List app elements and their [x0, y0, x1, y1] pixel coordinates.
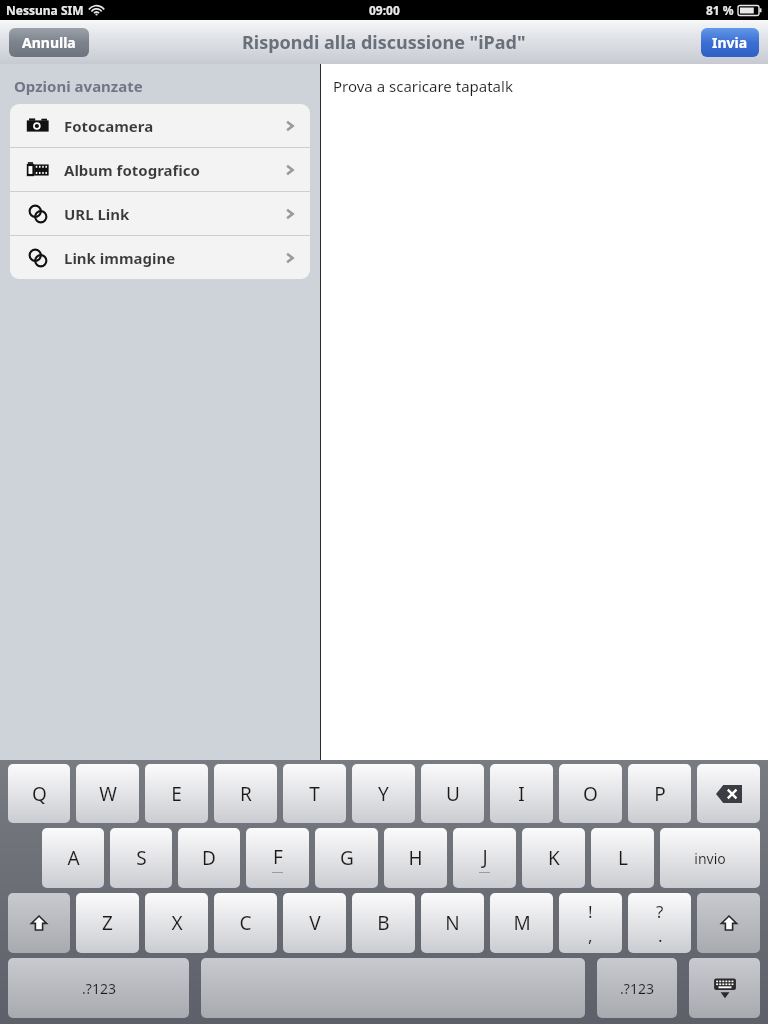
staticText: 09:00 [369, 2, 400, 18]
button[interactable]: .?123 [8, 958, 189, 1018]
staticText: R [240, 781, 252, 807]
button[interactable]: O [559, 764, 622, 823]
button[interactable]: URL Link [10, 192, 310, 235]
staticText: C [239, 910, 252, 936]
staticText: Annulla [22, 33, 76, 52]
staticText: , [588, 924, 593, 947]
staticText: G [340, 845, 354, 871]
button[interactable]: Invia [701, 28, 759, 57]
button[interactable]: G [315, 828, 378, 888]
button[interactable]: U [421, 764, 484, 823]
staticText: .?123 [82, 979, 116, 998]
button[interactable]: invio [660, 828, 760, 888]
staticText: Album fotografico [64, 160, 200, 180]
staticText: ? [656, 900, 664, 923]
button[interactable]: E [145, 764, 208, 823]
button[interactable]: A [42, 828, 104, 888]
staticText: Q [32, 781, 47, 807]
button[interactable]: C [214, 893, 277, 953]
staticText: M [513, 910, 531, 936]
button[interactable]: B [352, 893, 415, 953]
staticText: E [171, 781, 182, 807]
button[interactable]: Y [352, 764, 415, 823]
button[interactable]: Album fotografico [10, 148, 310, 191]
staticText: .?123 [620, 979, 654, 998]
staticText: B [377, 910, 390, 936]
button[interactable]: I [490, 764, 553, 823]
staticText: Nessuna SIM [6, 2, 84, 18]
staticText: J [482, 844, 488, 870]
staticText: Link immagine [64, 248, 176, 268]
button[interactable]: .?123 [597, 958, 677, 1018]
staticText: D [202, 845, 216, 871]
staticText: W [99, 781, 117, 807]
button[interactable]: Annulla [9, 28, 89, 57]
button[interactable]: Z [76, 893, 139, 953]
staticText: Opzioni avanzate [14, 76, 143, 96]
button[interactable]: J [453, 828, 516, 888]
staticText: V [309, 910, 321, 936]
staticText: X [171, 910, 183, 936]
staticText: A [67, 845, 80, 871]
staticText: 81 % [706, 2, 734, 18]
button[interactable]: D [178, 828, 240, 888]
button[interactable]: Shift [8, 893, 70, 953]
staticText: invio [694, 849, 726, 868]
staticText: Fotocamera [64, 116, 154, 136]
button[interactable]: S [110, 828, 172, 888]
button[interactable]: Fotocamera [10, 104, 310, 147]
button[interactable]: Backspace [697, 764, 760, 823]
staticText: Invia [712, 33, 748, 52]
staticText: S [136, 845, 147, 871]
button[interactable]: Space [201, 958, 585, 1018]
staticText: P [654, 781, 666, 807]
button[interactable]: M [490, 893, 553, 953]
staticText: H [408, 845, 423, 871]
staticText: Z [102, 910, 113, 936]
button[interactable]: Link immagine [10, 236, 310, 279]
staticText: O [583, 781, 598, 807]
staticText: T [309, 781, 320, 807]
button[interactable]: P [628, 764, 691, 823]
button[interactable]: N [421, 893, 484, 953]
staticText: I [518, 781, 525, 807]
button[interactable]: R [214, 764, 277, 823]
staticText: Rispondi alla discussione "iPad" [242, 30, 526, 55]
button[interactable]: K [522, 828, 585, 888]
button[interactable]: T [283, 764, 346, 823]
staticText: L [618, 845, 628, 871]
button[interactable]: Shift [697, 893, 760, 953]
button[interactable]: V [283, 893, 346, 953]
button[interactable]: Hide keyboard [689, 958, 760, 1018]
button[interactable]: ! [559, 893, 622, 953]
button[interactable]: X [145, 893, 208, 953]
staticText: N [445, 910, 460, 936]
staticText: K [548, 845, 560, 871]
staticText: . [658, 924, 663, 947]
staticText: ! [588, 900, 593, 923]
button[interactable]: Q [8, 764, 70, 823]
staticText: U [446, 781, 460, 807]
button[interactable]: H [384, 828, 447, 888]
button[interactable]: F [246, 828, 309, 888]
button[interactable]: W [76, 764, 139, 823]
staticText: URL Link [64, 204, 130, 224]
button[interactable]: L [591, 828, 654, 888]
staticText: Y [378, 781, 389, 807]
staticText: Prova a scaricare tapatalk [333, 76, 513, 96]
staticText: F [273, 844, 283, 870]
button[interactable]: ? [628, 893, 691, 953]
